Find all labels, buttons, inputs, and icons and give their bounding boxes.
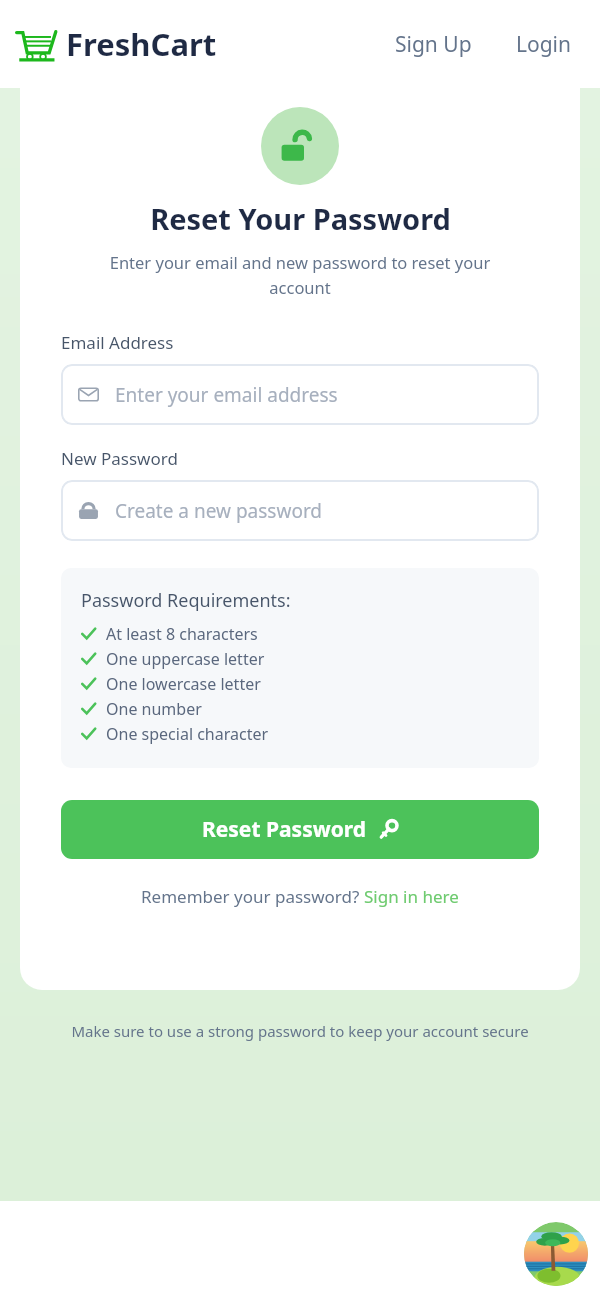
staticText: FreshCart bbox=[66, 23, 217, 65]
staticText: Remember your password? bbox=[141, 885, 364, 908]
staticText: Login bbox=[516, 30, 572, 59]
staticText: One special character bbox=[106, 723, 269, 745]
staticText: One uppercase letter bbox=[106, 648, 265, 670]
staticText: Make sure to use a strong password to ke… bbox=[71, 1021, 529, 1041]
staticText: Email Address bbox=[61, 331, 174, 354]
staticText: At least 8 characters bbox=[106, 623, 258, 645]
button[interactable]: Island avatar bbox=[524, 1222, 588, 1286]
staticText: Password Requirements: bbox=[81, 588, 291, 613]
staticText: Sign Up bbox=[395, 30, 472, 59]
button[interactable]: Create a new password bbox=[61, 480, 539, 541]
staticText: Create a new password bbox=[115, 498, 323, 524]
staticText: New Password bbox=[61, 447, 178, 470]
other: FreshCart logo bbox=[14, 22, 58, 66]
staticText: Reset Password bbox=[202, 815, 367, 844]
button[interactable]: Sign in here bbox=[364, 885, 459, 908]
staticText: Sign in here bbox=[364, 885, 459, 908]
button[interactable]: Enter your email address bbox=[61, 364, 539, 425]
staticText: One number bbox=[106, 698, 202, 720]
staticText: Reset Your Password bbox=[150, 199, 451, 238]
button[interactable]: Login bbox=[506, 22, 582, 67]
button[interactable]: Sign Up bbox=[385, 22, 482, 67]
staticText: One lowercase letter bbox=[106, 673, 261, 695]
staticText: Enter your email and new password to res… bbox=[80, 251, 520, 298]
staticText: Enter your email address bbox=[115, 382, 338, 408]
button[interactable]: Reset Password bbox=[61, 800, 539, 859]
